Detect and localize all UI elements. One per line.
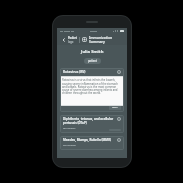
staticText: Rotavirus (RV)	[63, 70, 86, 74]
staticText: 06/10/2021	[63, 126, 76, 129]
staticText: patient	[88, 59, 97, 63]
staticText: 04/12/2020	[63, 143, 76, 146]
button[interactable]: Info	[117, 117, 121, 121]
button[interactable]: Info	[117, 138, 121, 142]
staticText: Immunization Summary	[89, 35, 124, 44]
button[interactable]: Back	[60, 36, 67, 43]
staticText: done	[112, 106, 118, 109]
staticText: Rotavirus is a virus that infects the bo…	[62, 78, 122, 94]
staticText: Diphtheria, tetanus, and acellular pertu…	[63, 117, 115, 125]
button[interactable]: done	[109, 105, 121, 110]
staticText: Julia Smith	[81, 49, 104, 55]
button[interactable]: Info	[117, 70, 121, 74]
staticText: logo	[68, 40, 74, 44]
staticText: Pocket	[68, 36, 77, 40]
button[interactable]: Diphtheria, tetanus, and acellular pertu…	[60, 115, 124, 133]
button[interactable]: patient	[84, 58, 101, 64]
staticText: Measles, Mumps, Rubella (MMR)	[63, 138, 112, 142]
other: App icon	[82, 37, 87, 42]
button[interactable]: Measles, Mumps, Rubella (MMR)	[60, 136, 124, 150]
button[interactable]: Rotavirus (RV)	[60, 68, 124, 112]
